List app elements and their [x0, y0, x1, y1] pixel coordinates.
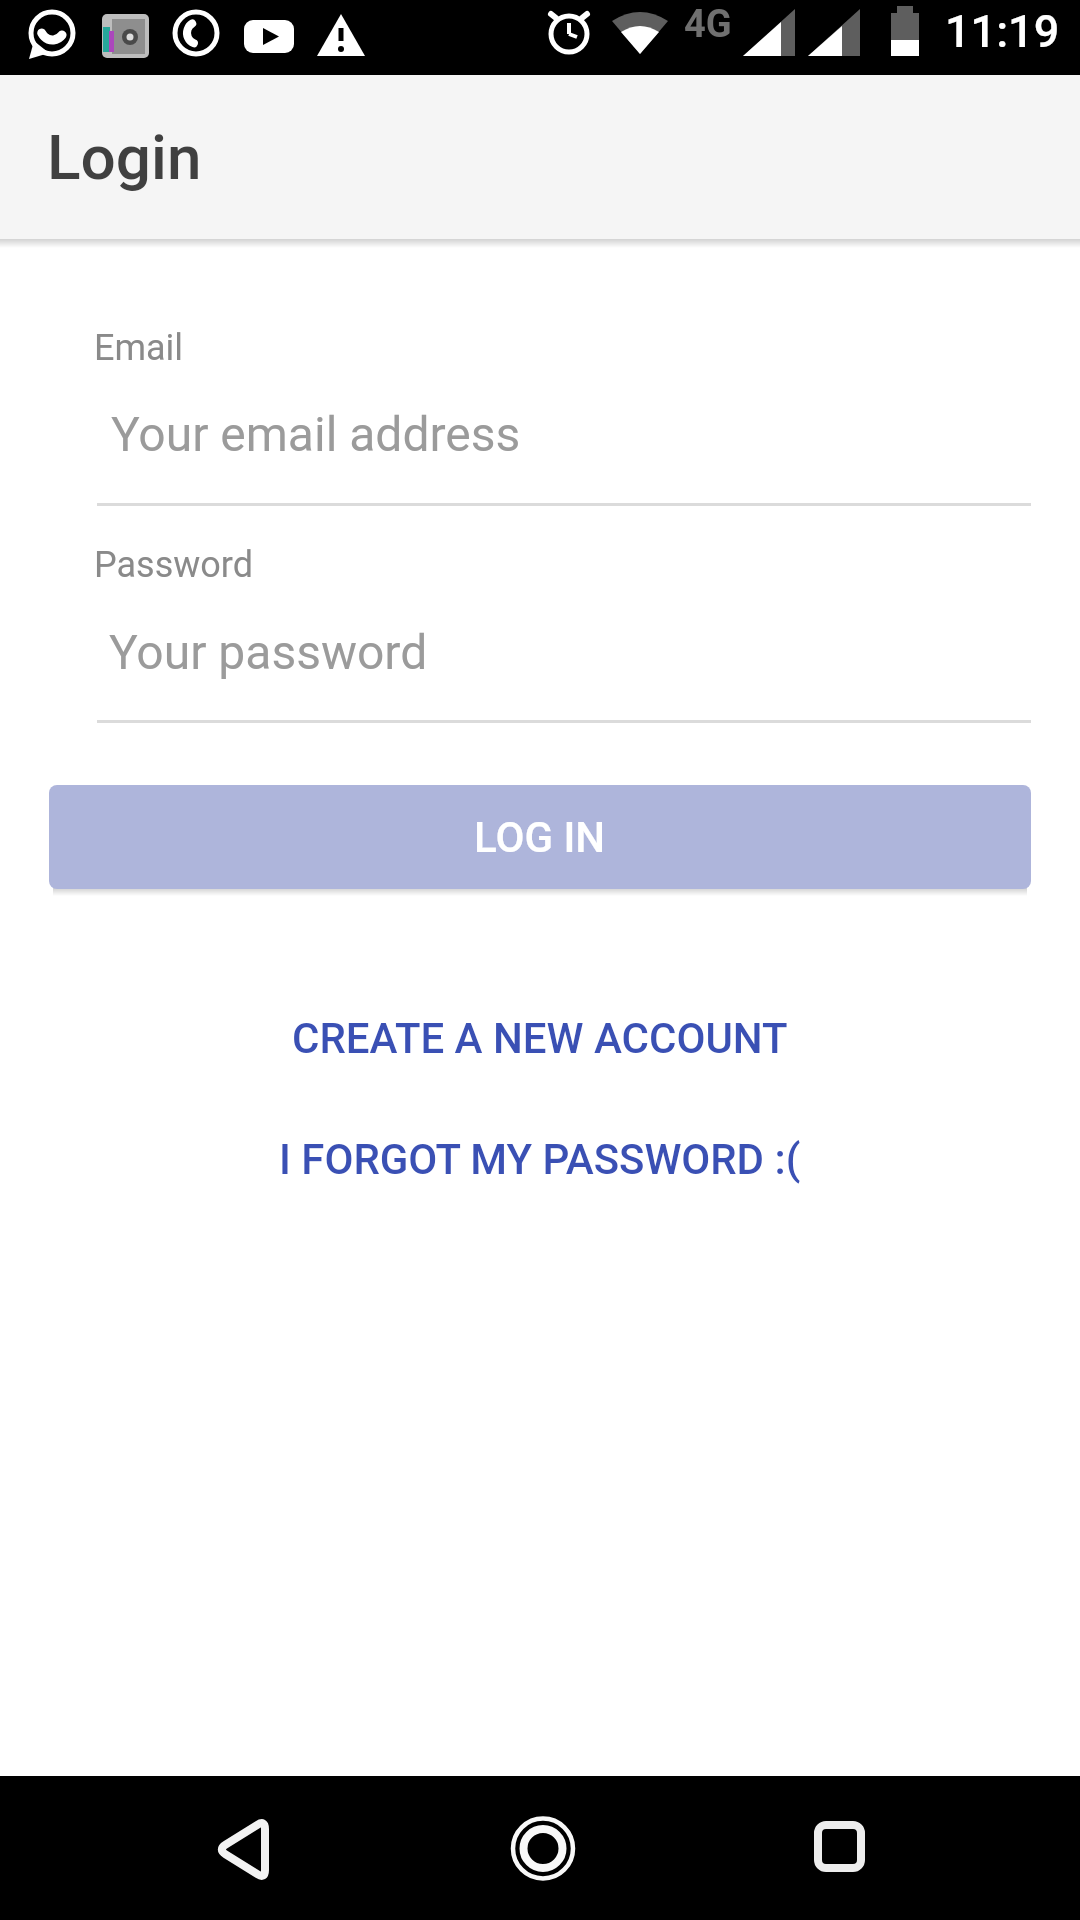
staticText: Password — [94, 544, 254, 586]
staticText: Your password — [109, 624, 428, 680]
staticText: Email — [94, 327, 184, 369]
button[interactable]: LOG IN — [49, 785, 1031, 889]
button[interactable] — [483, 1788, 603, 1908]
button[interactable] — [780, 1788, 900, 1908]
button[interactable] — [183, 1788, 303, 1908]
button[interactable]: CREATE A NEW ACCOUNT — [292, 1014, 788, 1063]
staticText: 4G — [684, 2, 732, 47]
staticText: CREATE A NEW ACCOUNT — [292, 1014, 788, 1063]
staticText: Login — [47, 121, 202, 194]
staticText: 11:19 — [945, 5, 1060, 58]
staticText: I FORGOT MY PASSWORD :( — [279, 1135, 801, 1184]
staticText: Your email address — [111, 406, 521, 462]
button[interactable]: I FORGOT MY PASSWORD :( — [279, 1135, 801, 1184]
staticText: LOG IN — [474, 813, 606, 862]
